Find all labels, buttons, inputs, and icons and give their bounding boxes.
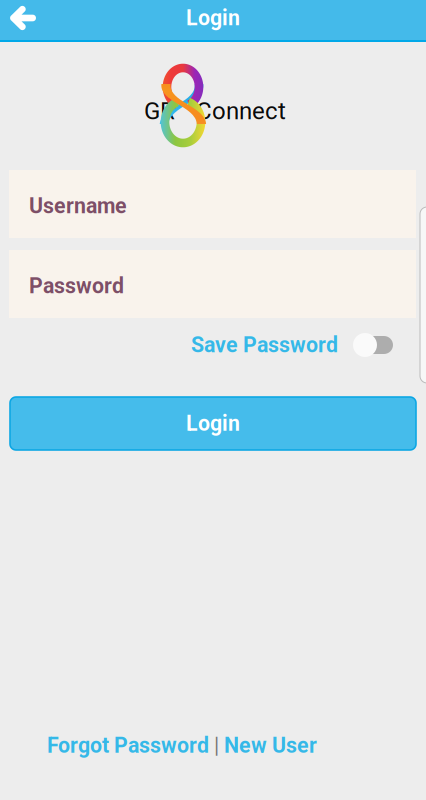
- button[interactable]: New User: [224, 733, 317, 758]
- button[interactable]: Password: [9, 250, 416, 318]
- staticText: New User: [224, 733, 317, 758]
- staticText: Connect: [196, 97, 286, 125]
- staticText: Login: [186, 411, 240, 436]
- button[interactable]: Save Password: [191, 330, 341, 360]
- button[interactable]: Forgot Password: [47, 733, 209, 758]
- staticText: Forgot Password: [47, 733, 209, 758]
- staticText: Password: [29, 273, 124, 298]
- button[interactable]: Login: [10, 397, 416, 450]
- staticText: GR: [144, 97, 175, 125]
- button[interactable]: Save Password: [351, 333, 391, 357]
- staticText: Login: [186, 5, 240, 30]
- button[interactable]: Username: [9, 170, 416, 238]
- button[interactable]: Back: [0, 0, 46, 42]
- staticText: Username: [29, 193, 127, 218]
- staticText: Save Password: [191, 332, 338, 357]
- staticText: |: [209, 733, 224, 758]
